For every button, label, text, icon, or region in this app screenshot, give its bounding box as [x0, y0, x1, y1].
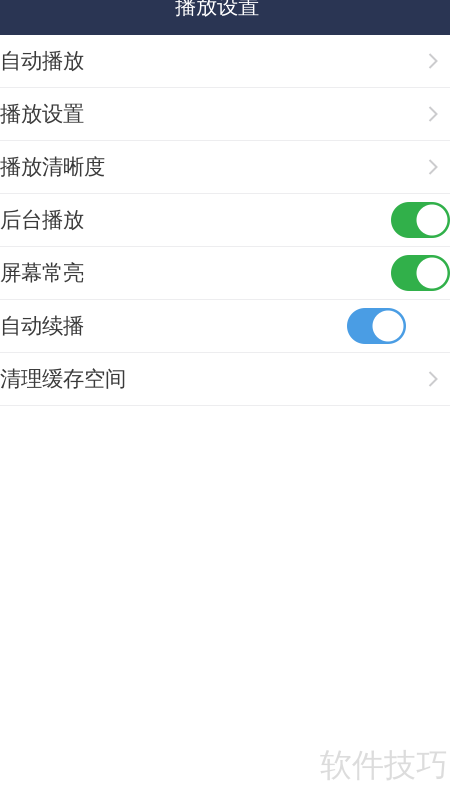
button[interactable]: 后台播放 [0, 194, 450, 247]
button[interactable]: 播放清晰度 [0, 141, 450, 194]
staticText: 清理缓存空间 [0, 366, 126, 392]
staticText: 后台播放 [0, 207, 84, 233]
button[interactable]: 屏幕常亮 [0, 247, 450, 300]
staticText: 屏幕常亮 [0, 260, 84, 286]
staticText: 自动播放 [0, 48, 84, 74]
staticText: 软件技巧 [320, 746, 448, 785]
staticText: 播放清晰度 [0, 154, 105, 180]
staticText: 播放设置 [175, 0, 259, 20]
button[interactable]: 清理缓存空间 [0, 353, 450, 406]
button[interactable]: 自动续播 [0, 300, 450, 353]
staticText: 自动续播 [0, 313, 84, 339]
button[interactable]: 自动播放 [0, 35, 450, 88]
staticText: 播放设置 [0, 101, 84, 127]
button[interactable]: 播放设置 [0, 88, 450, 141]
